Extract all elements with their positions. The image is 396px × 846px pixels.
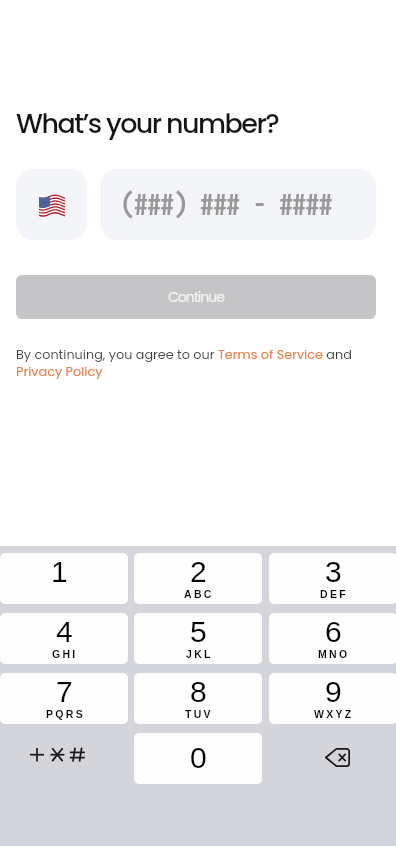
- staticText: 6: [325, 615, 342, 649]
- button[interactable]: 6: [269, 613, 396, 664]
- button[interactable]: Select country code: [16, 169, 87, 240]
- staticText: 3: [325, 555, 342, 589]
- staticText: 1: [51, 555, 68, 589]
- button[interactable]: 2: [134, 553, 262, 604]
- button[interactable]: 5: [134, 613, 262, 664]
- staticText: WXYZ: [314, 708, 354, 720]
- staticText: GHI: [52, 648, 78, 660]
- button[interactable]: (###) ### - ####: [100, 169, 376, 240]
- staticText: 4: [56, 615, 73, 649]
- button[interactable]: 9: [269, 673, 396, 724]
- staticText: JKL: [186, 648, 213, 660]
- button[interactable]: 1: [0, 553, 128, 604]
- button[interactable]: 7: [0, 673, 128, 724]
- button[interactable]: 3: [269, 553, 396, 604]
- staticText: TUV: [185, 708, 213, 720]
- staticText: By continuing, you agree to our Terms of…: [16, 346, 358, 381]
- button[interactable]: Symbols plus asterisk hash: [0, 733, 128, 784]
- button[interactable]: 8: [134, 673, 262, 724]
- staticText: (###) ### - ####: [121, 187, 333, 222]
- staticText: 7: [56, 675, 73, 709]
- staticText: 2: [190, 555, 207, 589]
- button[interactable]: Backspace: [269, 733, 396, 784]
- staticText: PQRS: [46, 708, 85, 720]
- staticText: DEF: [320, 588, 348, 600]
- staticText: 0: [190, 741, 207, 775]
- staticText: 8: [190, 675, 207, 709]
- staticText: ABC: [184, 588, 214, 600]
- button[interactable]: 0: [134, 733, 262, 784]
- button[interactable]: 4: [0, 613, 128, 664]
- staticText: What’s your number?: [16, 105, 279, 143]
- staticText: 5: [190, 615, 207, 649]
- button[interactable]: Continue: [16, 275, 376, 319]
- staticText: Continue: [168, 287, 224, 307]
- staticText: MNO: [318, 648, 350, 660]
- staticText: 9: [325, 675, 342, 709]
